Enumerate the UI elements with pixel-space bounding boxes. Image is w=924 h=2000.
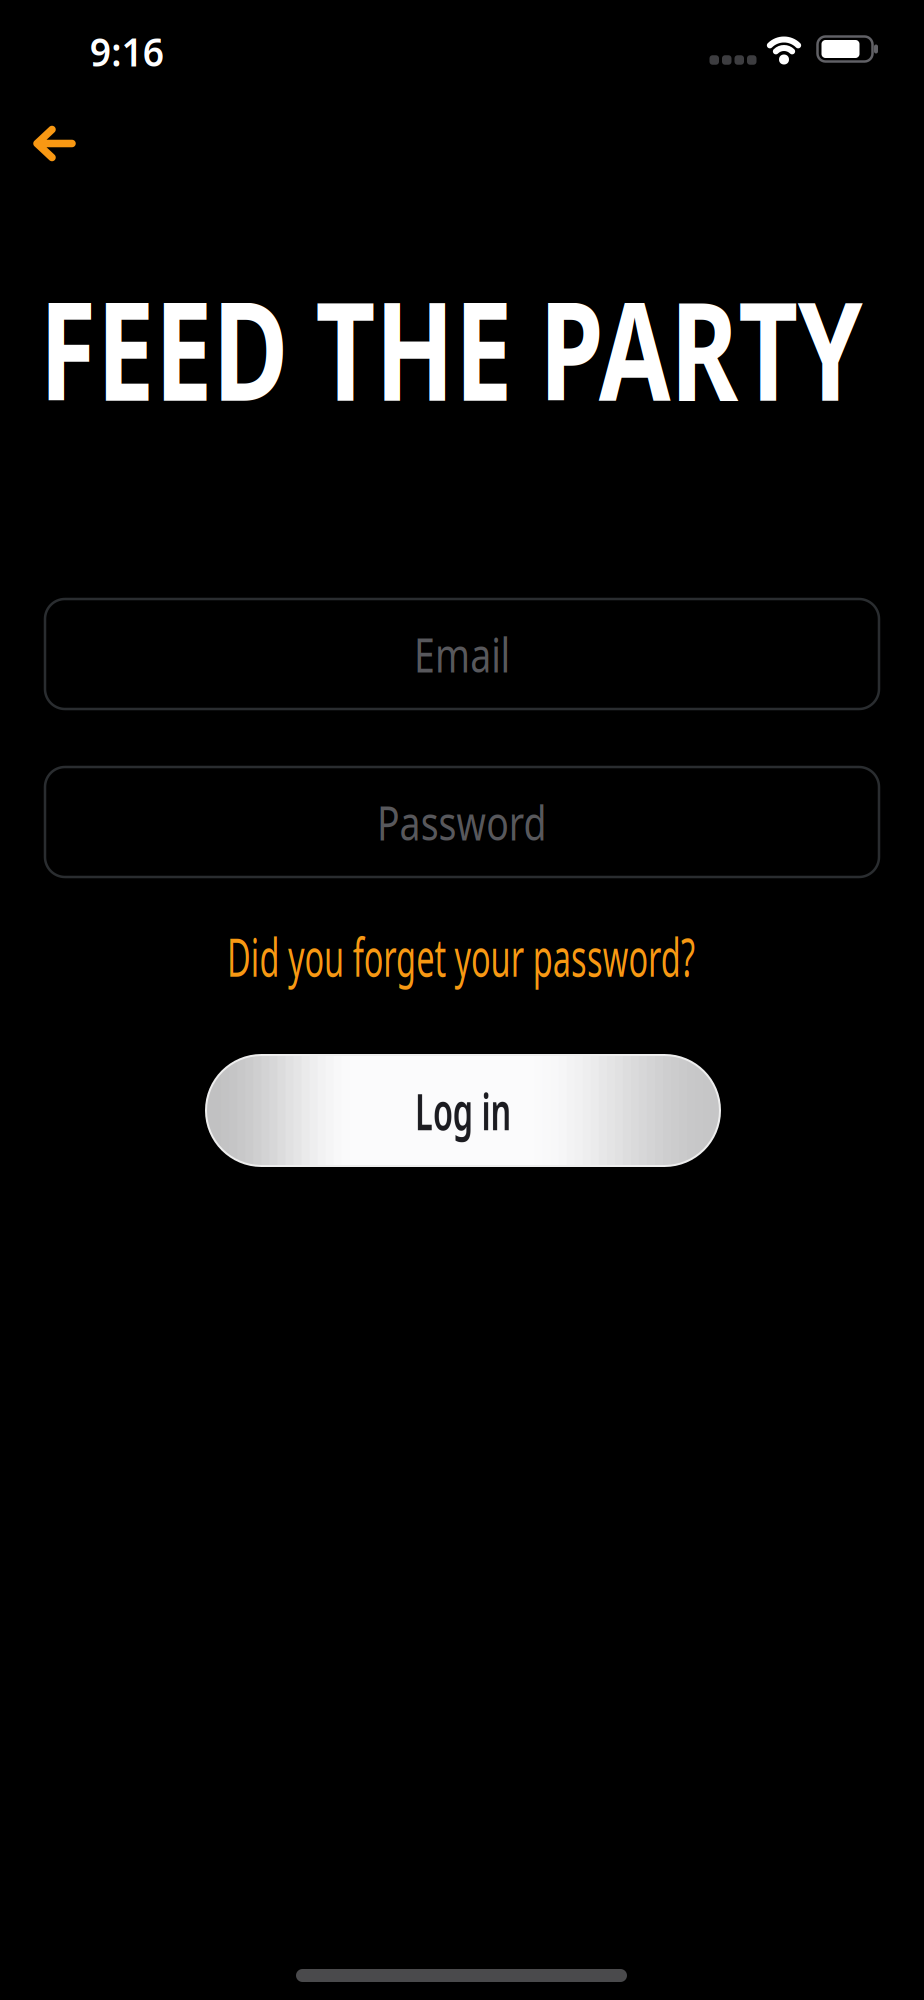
staticText: FEED THE PARTY xyxy=(0,258,924,438)
button[interactable]: Did you forget your password? xyxy=(77,921,844,991)
button[interactable]: Back xyxy=(35,127,75,159)
button[interactable]: Email xyxy=(45,599,879,709)
staticText: 9:16 xyxy=(87,24,167,77)
staticText: Password xyxy=(353,790,571,854)
button[interactable]: Log in xyxy=(206,1055,720,1166)
button[interactable]: Password xyxy=(45,767,879,877)
staticText: Log in xyxy=(388,1077,538,1144)
staticText: Email xyxy=(400,622,523,686)
staticText: Did you forget your password? xyxy=(77,921,844,991)
